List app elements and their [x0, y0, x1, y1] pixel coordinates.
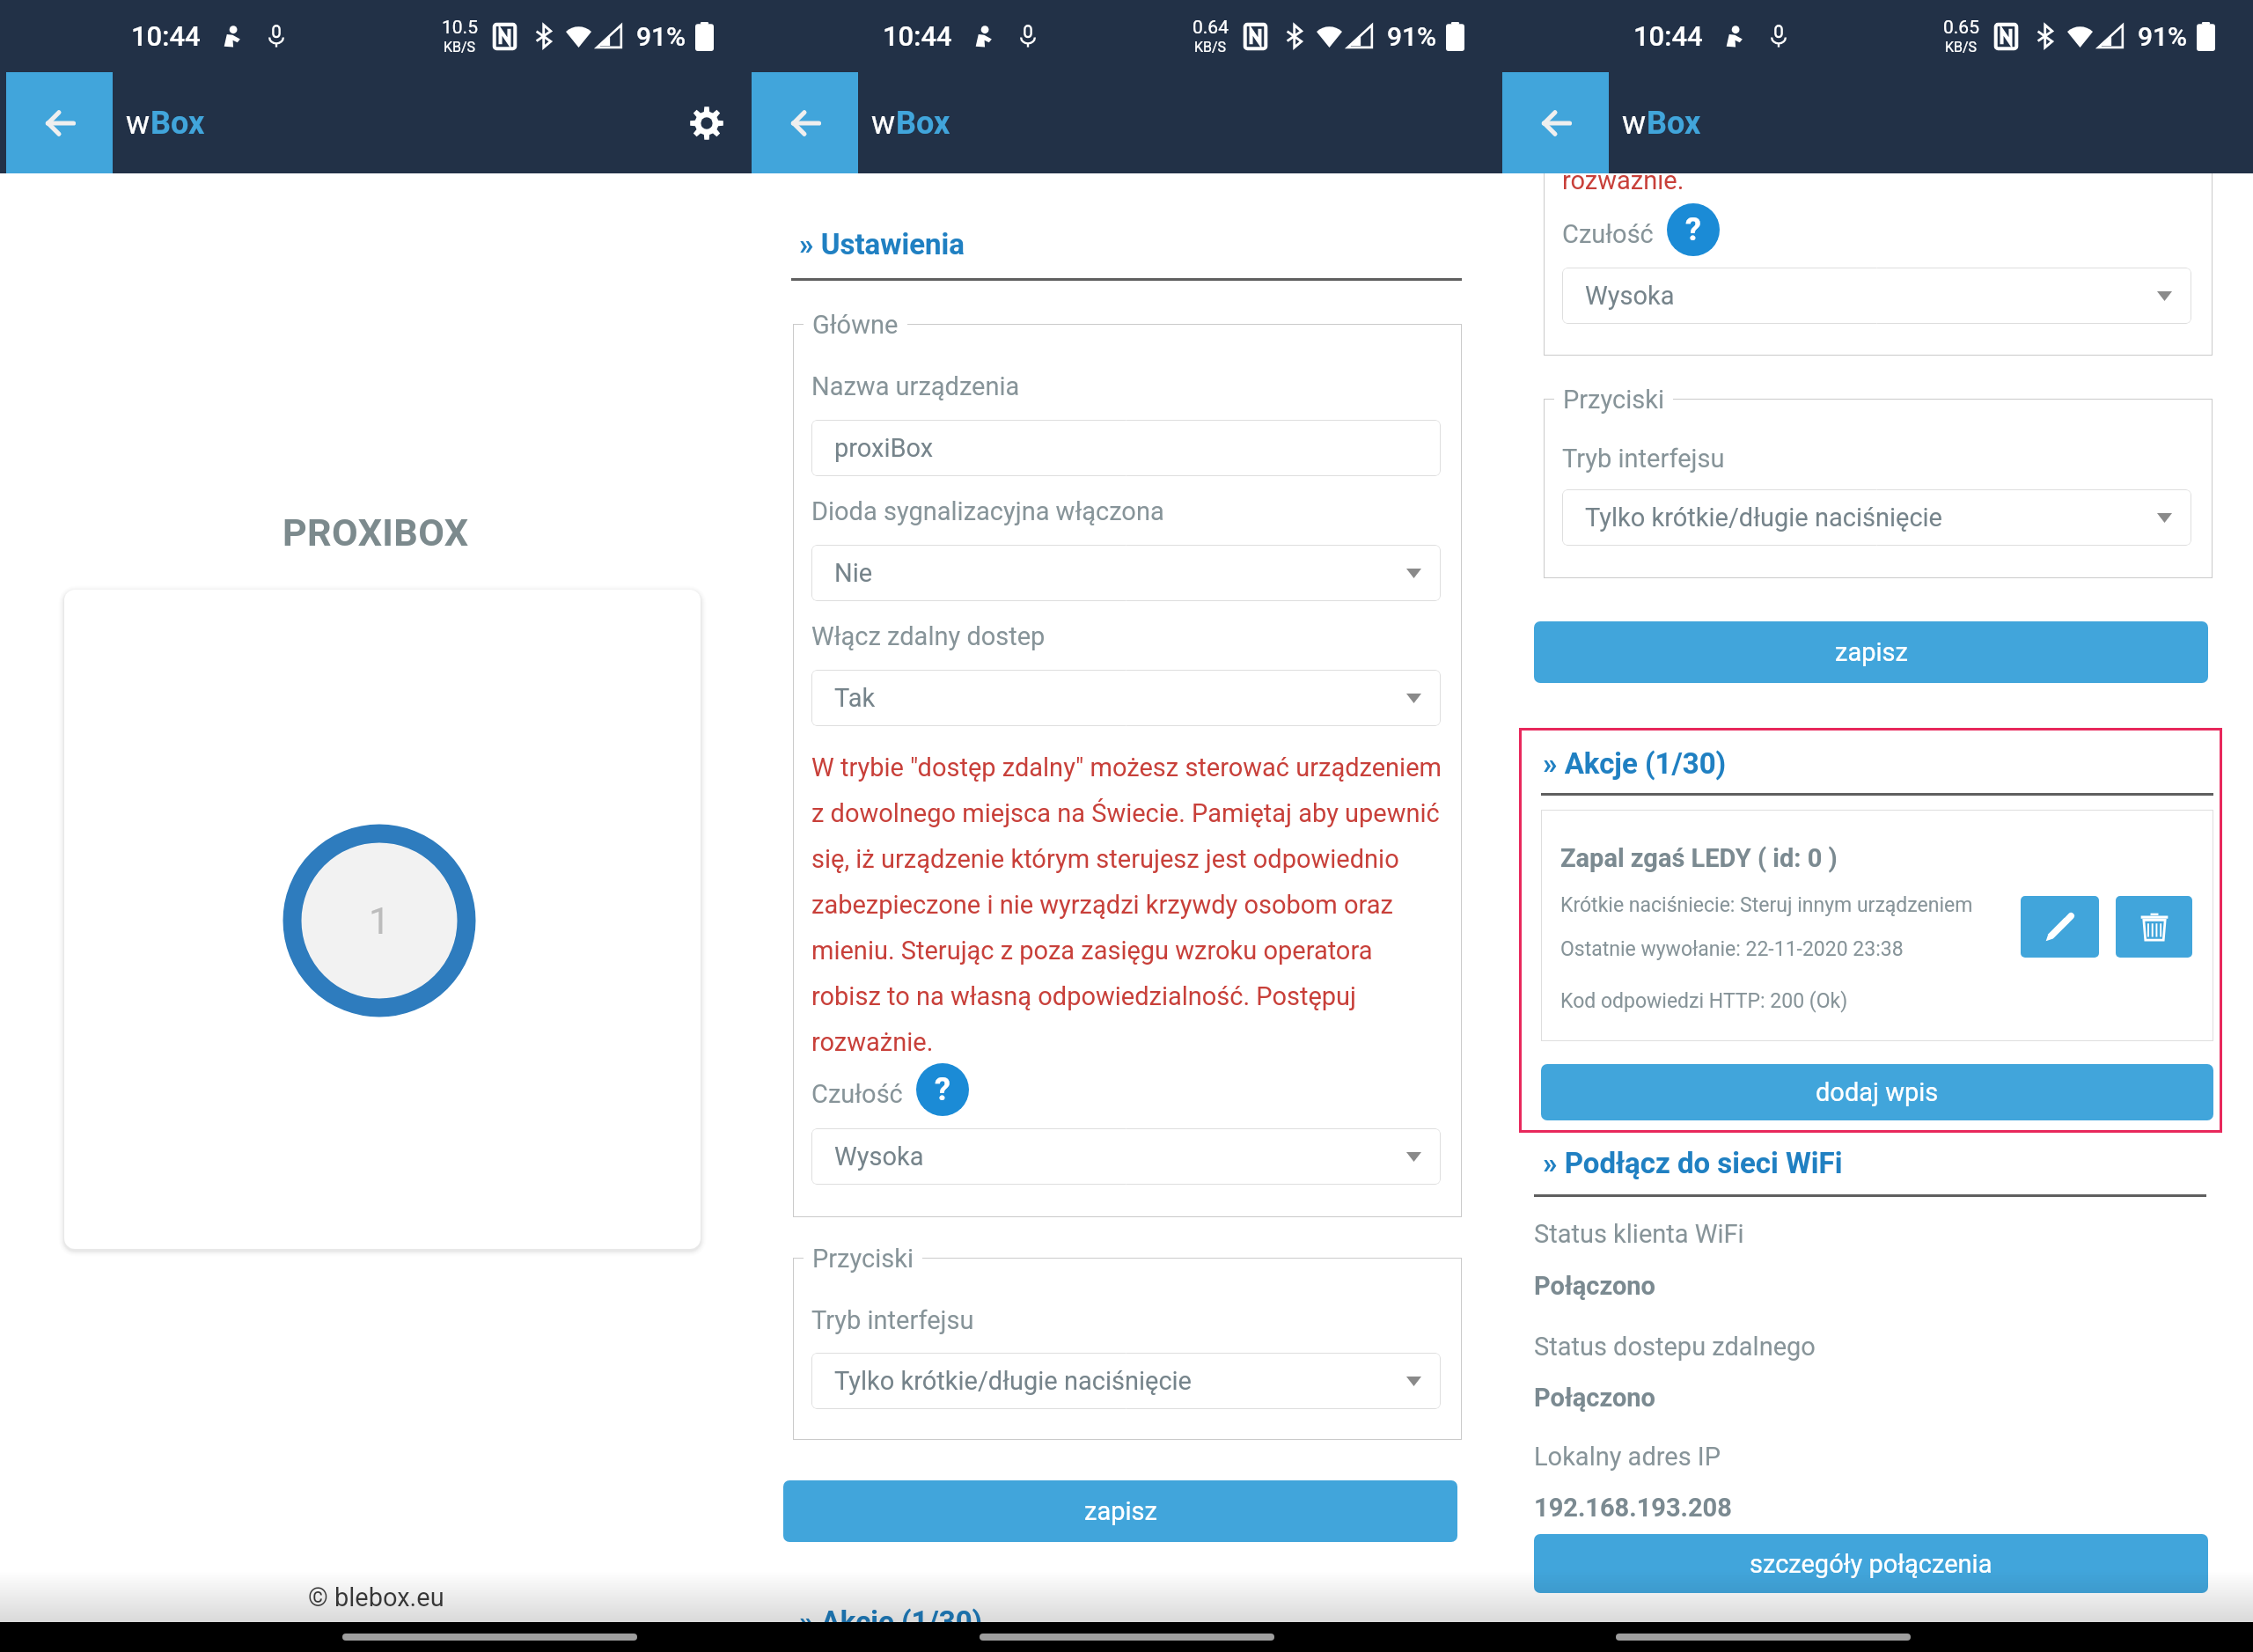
staticText: Tryb interfejsu — [1562, 444, 1725, 474]
staticText: Kod odpowiedzi HTTP: 200 (Ok) — [1560, 989, 1848, 1013]
staticText: KB/S — [1945, 39, 1978, 55]
staticText: Tak — [834, 683, 876, 713]
staticText: w — [871, 105, 896, 142]
staticText: Główne — [812, 310, 899, 340]
button[interactable]: Wysoka — [1562, 268, 2191, 324]
staticText: Nazwa urządzenia — [811, 371, 1020, 401]
staticText: Czułość — [1562, 219, 1654, 249]
staticText: Nie — [834, 558, 873, 588]
staticText: Wysoka — [1585, 281, 1675, 311]
staticText: 10:44 — [131, 20, 201, 52]
staticText: 10:44 — [883, 20, 952, 52]
staticText: ? — [935, 1071, 950, 1108]
staticText: Lokalny adres IP — [1534, 1442, 1721, 1472]
button[interactable]: Back — [1502, 72, 1609, 173]
staticText: KB/S — [1194, 39, 1227, 55]
button[interactable]: Back — [6, 72, 113, 173]
staticText: Status dostepu zdalnego — [1534, 1332, 1816, 1362]
button[interactable]: Help — [916, 1063, 969, 1116]
staticText: 0.64 — [1193, 17, 1229, 39]
staticText: 1 — [369, 899, 391, 943]
staticText: w — [1622, 105, 1647, 142]
button[interactable]: Nie — [811, 545, 1441, 601]
staticText: Box — [896, 105, 950, 142]
staticText: Box — [150, 105, 205, 142]
button[interactable]: zapisz — [783, 1480, 1457, 1542]
button[interactable]: Help — [1667, 203, 1720, 256]
button[interactable]: Delete — [2116, 896, 2192, 958]
staticText: rozważnie. — [1562, 165, 1684, 195]
button[interactable]: Edit — [2021, 896, 2099, 958]
staticText: Przyciski — [812, 1244, 914, 1274]
staticText: Ostatnie wywołanie: 22-11-2020 23:38 — [1560, 937, 1904, 961]
staticText: Status klienta WiFi — [1534, 1219, 1744, 1249]
button[interactable]: Settings — [674, 91, 739, 156]
button[interactable]: dodaj wpis — [1541, 1064, 2213, 1120]
staticText: ? — [1685, 211, 1701, 248]
staticText: w — [126, 105, 150, 142]
staticText: 91% — [636, 21, 686, 52]
staticText: Tylko krótkie/długie naciśnięcie — [1585, 503, 1942, 532]
button[interactable]: Tylko krótkie/długie naciśnięcie — [811, 1353, 1441, 1409]
button[interactable]: szczegóły połączenia — [1534, 1534, 2208, 1593]
staticText: Połączono — [1534, 1383, 1655, 1413]
staticText: Połączono — [1534, 1271, 1655, 1301]
button[interactable]: Tak — [811, 670, 1441, 726]
staticText: Włącz zdalny dostep — [811, 621, 1046, 651]
staticText: 10.5 — [442, 17, 478, 39]
staticText: Wysoka — [834, 1142, 924, 1171]
staticText: dodaj wpis — [1816, 1077, 1939, 1107]
button[interactable]: Wysoka — [811, 1128, 1441, 1185]
staticText: 10:44 — [1633, 20, 1703, 52]
staticText: Tylko krótkie/długie naciśnięcie — [834, 1366, 1192, 1396]
staticText: 91% — [2138, 21, 2188, 52]
staticText: PROXIBOX — [283, 510, 469, 554]
staticText: Tryb interfejsu — [811, 1305, 974, 1335]
staticText: Czułość — [811, 1079, 903, 1109]
staticText: szczegóły połączenia — [1750, 1549, 1992, 1579]
staticText: Krótkie naciśniecie: Steruj innym urządz… — [1560, 893, 1973, 917]
button[interactable]: Toggle output 1 — [64, 590, 701, 1249]
staticText: » Akcje (1/30) — [1543, 746, 1727, 781]
staticText: Box — [1647, 105, 1701, 142]
staticText: W trybie "dostęp zdalny" możesz sterować… — [811, 753, 1442, 1057]
staticText: © blebox.eu — [308, 1582, 444, 1612]
staticText: Dioda sygnalizacyjna włączona — [811, 496, 1164, 526]
staticText: » Akcje (1/30) — [799, 1604, 983, 1639]
staticText: Przyciski — [1563, 385, 1664, 415]
staticText: » Ustawienia — [799, 227, 965, 261]
button[interactable]: Tylko krótkie/długie naciśnięcie — [1562, 489, 2191, 546]
staticText: zapisz — [1835, 637, 1908, 667]
staticText: » Podłącz do sieci WiFi — [1543, 1146, 1843, 1180]
staticText: KB/S — [444, 39, 476, 55]
staticText: Zapal zgaś LEDY ( id: 0 ) — [1560, 843, 1838, 873]
staticText: proxiBox — [834, 433, 934, 463]
button[interactable]: zapisz — [1534, 621, 2208, 683]
button[interactable]: Back — [752, 72, 858, 173]
staticText: zapisz — [1084, 1496, 1157, 1526]
button[interactable]: proxiBox — [811, 420, 1441, 476]
staticText: 192.168.193.208 — [1534, 1493, 1732, 1523]
staticText: 91% — [1387, 21, 1437, 52]
staticText: 0.65 — [1943, 17, 1979, 39]
